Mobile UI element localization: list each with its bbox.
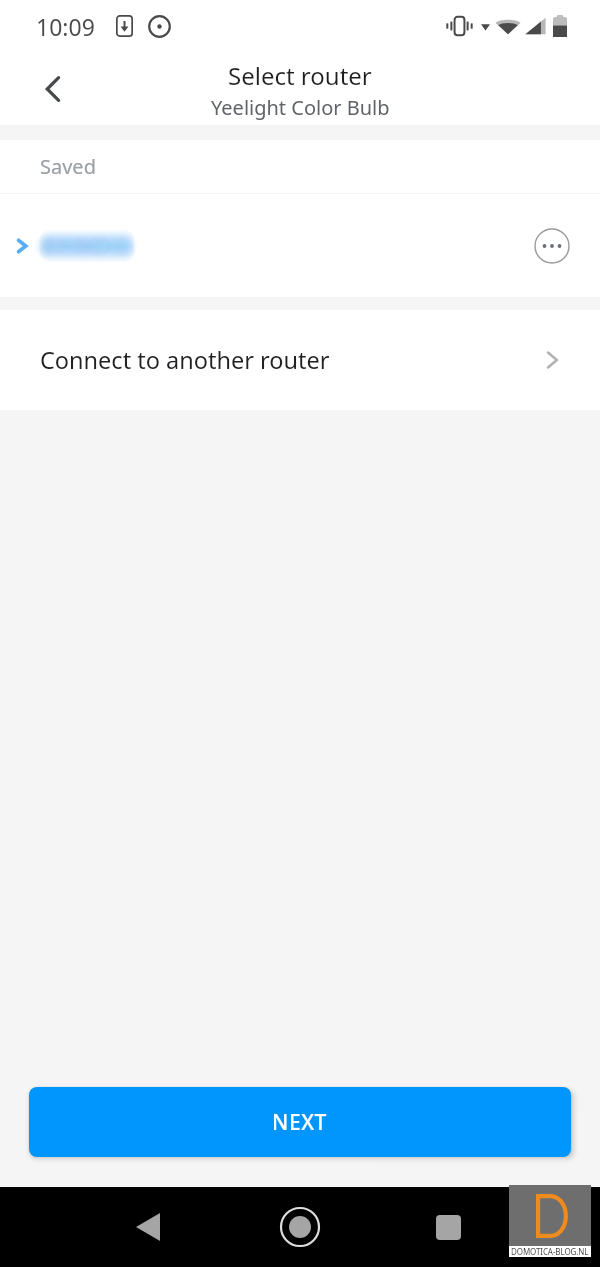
staticText: Saved	[40, 153, 96, 180]
staticText: Yeelight Color Bulb	[211, 94, 390, 121]
button[interactable]: More options	[530, 224, 574, 268]
button[interactable]: Home	[260, 1187, 340, 1267]
staticText: 10:09	[36, 11, 95, 42]
button[interactable]: Back	[24, 61, 80, 117]
staticText: Select router	[228, 59, 372, 92]
staticText: DOMOTICA-BLOG.NL	[511, 1246, 589, 1257]
staticText: NEXT	[272, 1108, 328, 1137]
button[interactable]: NEXT	[29, 1087, 571, 1157]
button[interactable]: Saved Wi-Fi network	[0, 194, 600, 297]
button[interactable]: Recent apps	[408, 1187, 488, 1267]
staticText: Connect to another router	[40, 344, 330, 376]
button[interactable]: Connect to another router	[0, 310, 600, 410]
button[interactable]: Back	[108, 1187, 188, 1267]
